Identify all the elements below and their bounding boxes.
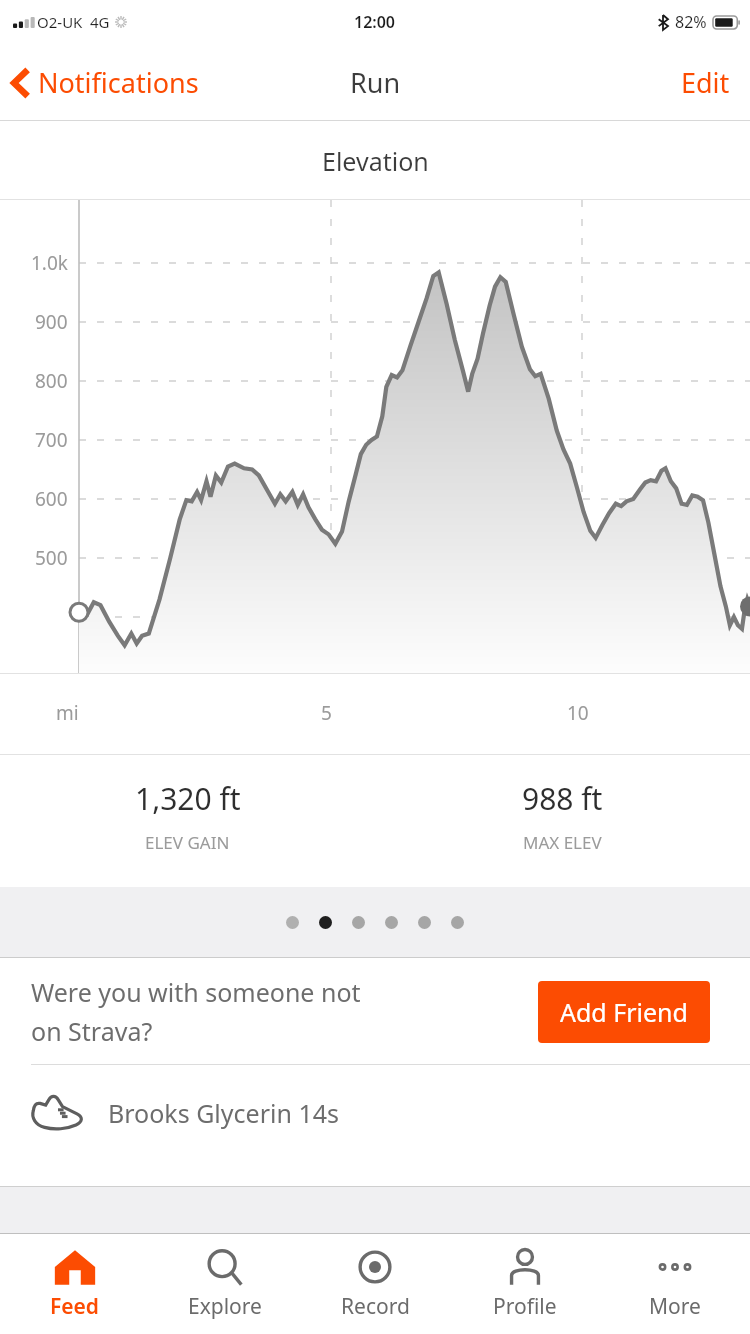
staticText: Notifications <box>38 64 199 101</box>
staticText: ELEV GAIN <box>145 831 230 854</box>
other: Shoes <box>30 1093 86 1133</box>
staticText: 500 <box>35 545 68 571</box>
staticText: 800 <box>35 368 68 394</box>
staticText: Edit <box>681 64 730 101</box>
staticText: Were you with someone not <box>31 975 361 1009</box>
staticText: Add Friend <box>560 995 688 1029</box>
button[interactable]: Shoes <box>0 1065 750 1161</box>
staticText: 12:00 <box>354 11 396 33</box>
button[interactable]: Explore <box>150 1234 300 1321</box>
button[interactable] <box>418 916 431 929</box>
staticText: 988 ft <box>522 778 603 819</box>
button[interactable]: Add Friend <box>538 981 710 1043</box>
staticText: O2-UK <box>37 12 83 32</box>
button[interactable]: Record <box>300 1234 450 1321</box>
staticText: Explore <box>188 1292 262 1321</box>
staticText: Brooks Glycerin 14s <box>108 1096 339 1130</box>
button[interactable]: Notifications <box>0 56 211 109</box>
staticText: MAX ELEV <box>523 831 602 854</box>
button[interactable] <box>451 916 464 929</box>
staticText: More <box>649 1292 701 1321</box>
staticText: Profile <box>493 1292 557 1321</box>
staticText: on Strava? <box>31 1014 153 1048</box>
staticText: 1,320 ft <box>135 778 241 819</box>
staticText: Feed <box>50 1292 100 1321</box>
staticText: mi <box>56 700 79 726</box>
staticText: Record <box>341 1292 410 1321</box>
button[interactable]: Profile <box>450 1234 600 1321</box>
staticText: 10 <box>567 700 589 726</box>
button[interactable] <box>319 916 332 929</box>
button[interactable]: Feed <box>0 1234 150 1321</box>
staticText: 700 <box>35 427 68 453</box>
button[interactable]: Edit <box>661 54 750 111</box>
staticText: 5 <box>321 700 332 726</box>
staticText: 1.0k <box>31 250 68 276</box>
staticText: Elevation <box>322 144 429 178</box>
staticText: 900 <box>35 309 68 335</box>
button[interactable] <box>352 916 365 929</box>
staticText: 4G <box>90 12 110 32</box>
staticText: 82% <box>675 11 707 33</box>
button[interactable]: More <box>600 1234 750 1321</box>
button[interactable] <box>286 916 299 929</box>
staticText: 600 <box>35 486 68 512</box>
staticText: Run <box>350 64 401 101</box>
button[interactable] <box>385 916 398 929</box>
